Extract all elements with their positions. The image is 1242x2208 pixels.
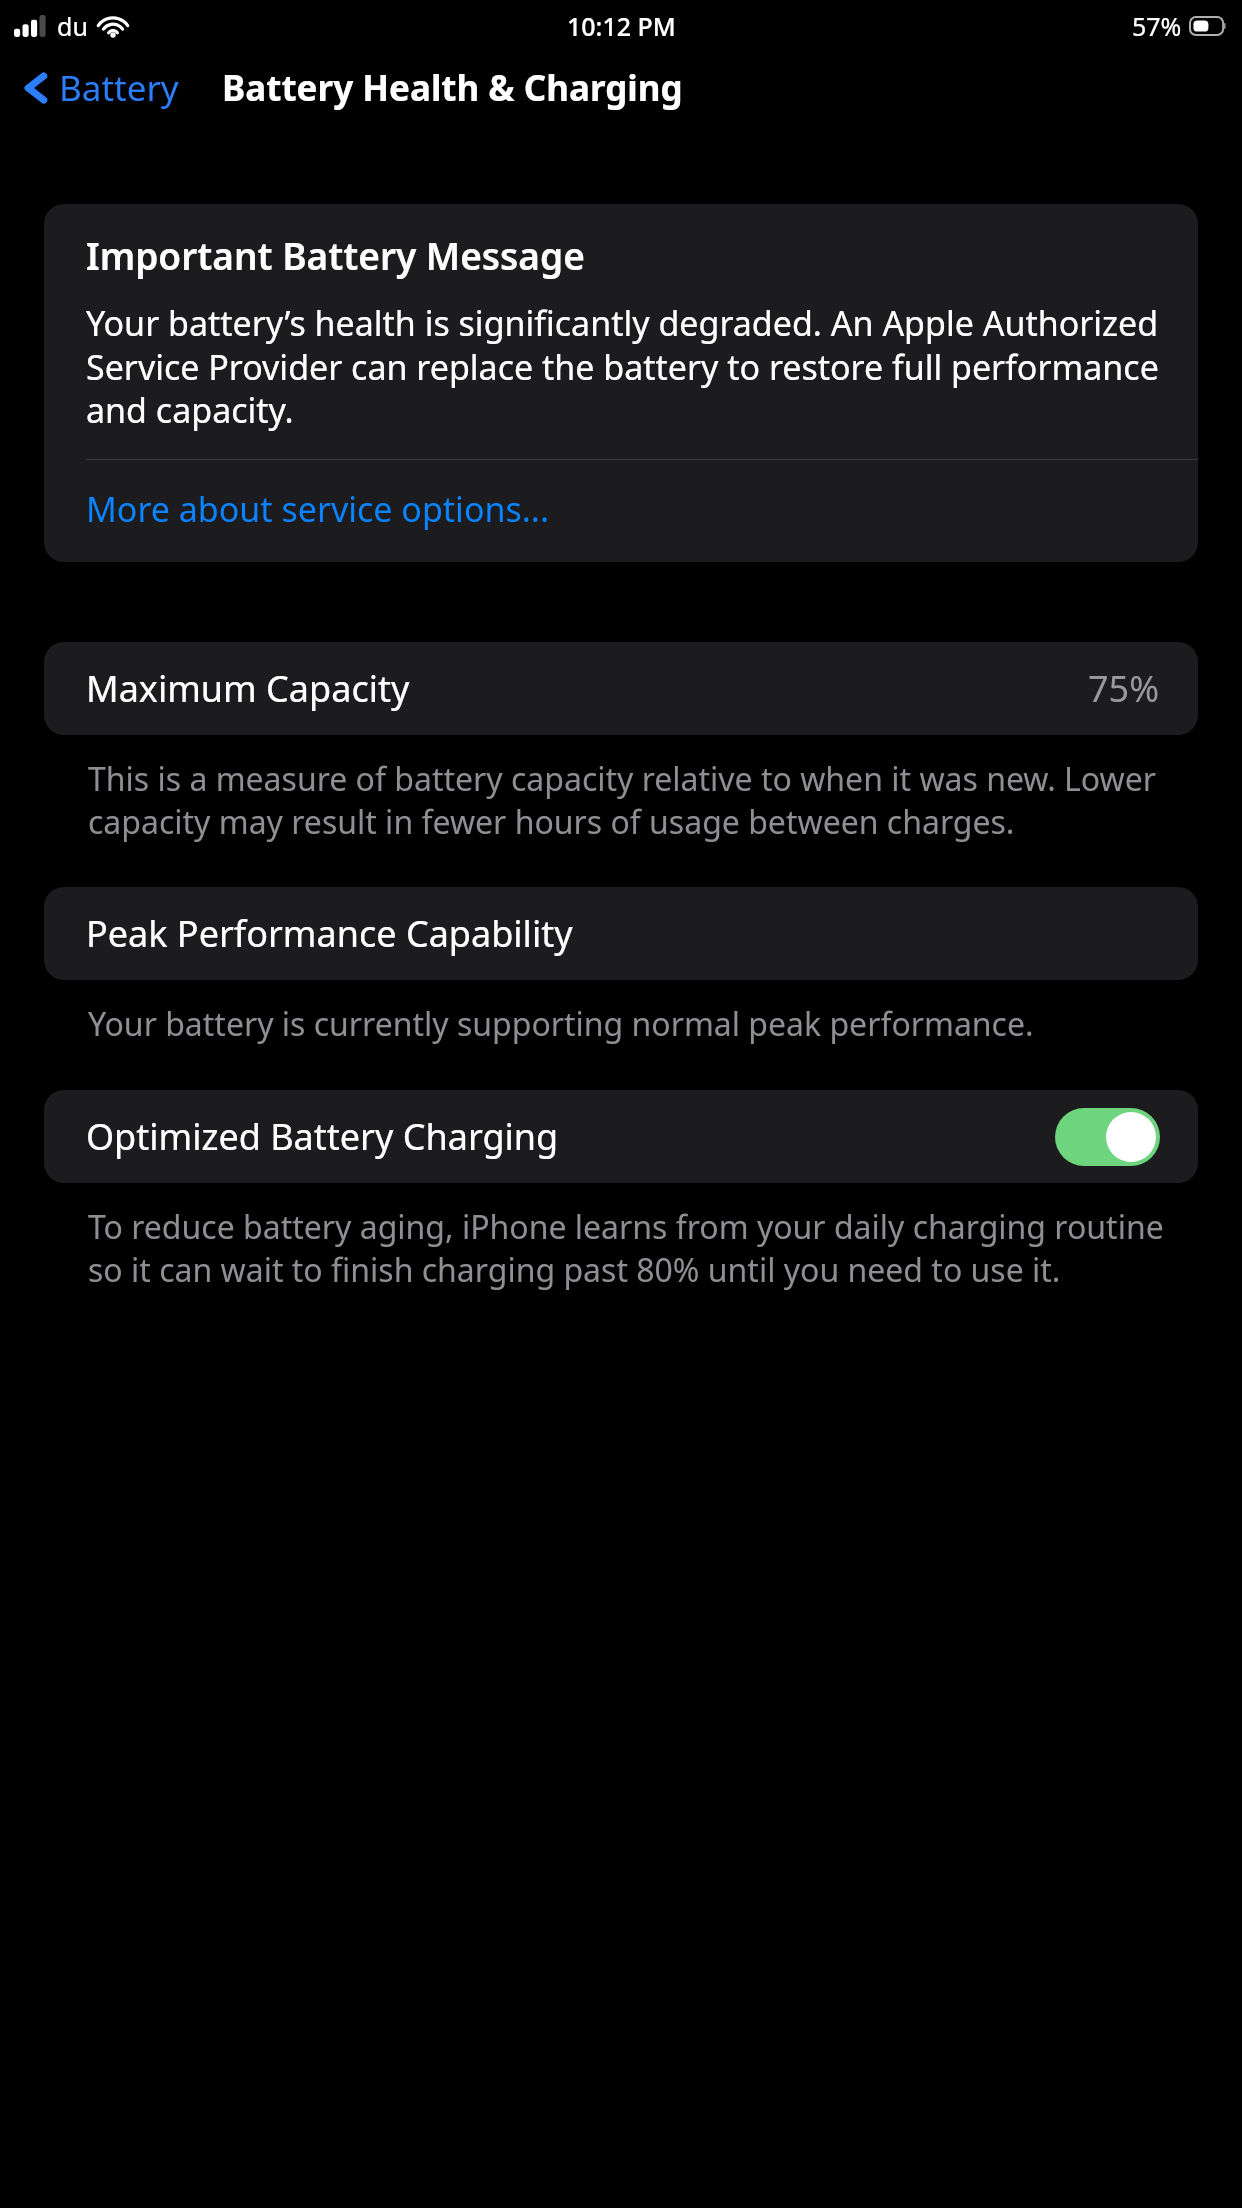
- staticText: Battery Health & Charging: [222, 64, 683, 112]
- staticText: Battery: [59, 64, 179, 112]
- staticText: Optimized Battery Charging: [86, 1112, 1055, 1161]
- button[interactable]: More about service options...: [44, 460, 1198, 562]
- staticText: To reduce battery aging, iPhone learns f…: [88, 1205, 1182, 1291]
- button[interactable]: Peak Performance Capability: [44, 887, 1198, 980]
- button[interactable]: Optimized Battery Charging toggle, on: [1055, 1108, 1160, 1166]
- staticText: 10:12 PM: [567, 9, 676, 43]
- button[interactable]: Battery: [18, 58, 185, 118]
- staticText: More about service options...: [86, 486, 550, 532]
- staticText: Important Battery Message: [86, 230, 585, 280]
- staticText: du: [57, 9, 88, 43]
- staticText: 57%: [1132, 9, 1182, 43]
- button[interactable]: Maximum Capacity: [44, 642, 1198, 735]
- staticText: Peak Performance Capability: [86, 909, 573, 958]
- staticText: 75%: [1088, 664, 1160, 713]
- staticText: This is a measure of battery capacity re…: [88, 757, 1182, 843]
- staticText: Your battery is currently supporting nor…: [88, 1002, 1182, 1046]
- staticText: Your battery’s health is significantly d…: [86, 300, 1164, 433]
- staticText: Maximum Capacity: [86, 664, 1088, 713]
